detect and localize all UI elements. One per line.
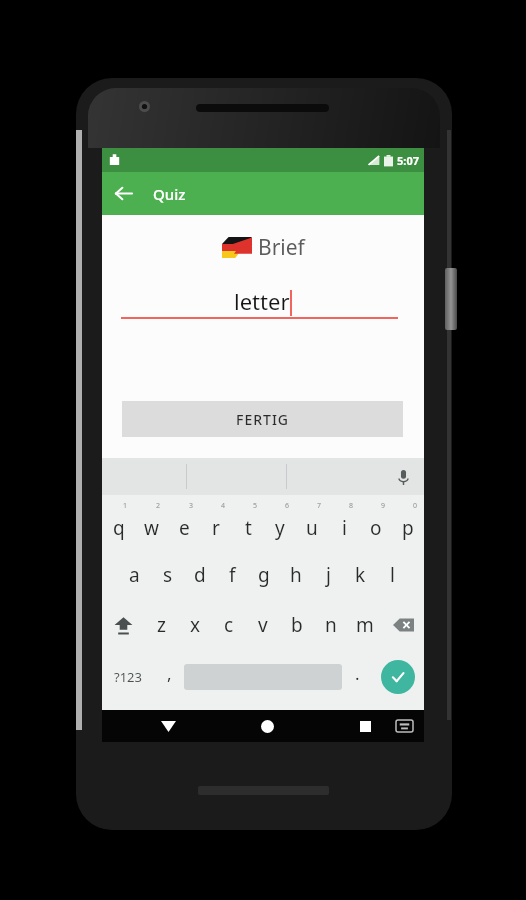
button[interactable]: x <box>178 601 212 649</box>
button[interactable]: Power <box>445 268 457 330</box>
staticText: 4 <box>221 501 226 511</box>
staticText: 8 <box>349 501 354 511</box>
button[interactable]: 3 <box>168 501 200 549</box>
staticText: 2 <box>156 501 161 511</box>
staticText: 9 <box>381 501 386 511</box>
staticText: m <box>356 612 374 638</box>
staticText: 7 <box>317 501 322 511</box>
button[interactable]: 0 <box>392 501 424 549</box>
button[interactable]: Shift <box>102 601 144 649</box>
button[interactable]: ?123 <box>102 651 154 703</box>
button[interactable]: 6 <box>264 501 296 549</box>
staticText: FERTIG <box>236 410 290 429</box>
button[interactable]: 2 <box>135 501 168 549</box>
staticText: c <box>224 612 234 638</box>
button[interactable]: Back <box>150 710 186 742</box>
staticText: h <box>290 562 302 588</box>
button[interactable]: m <box>348 601 382 649</box>
button[interactable]: z <box>144 601 178 649</box>
button[interactable]: Enter <box>381 660 415 694</box>
staticText: q <box>113 515 125 541</box>
button[interactable]: 1 <box>102 501 135 549</box>
staticText: e <box>179 515 190 541</box>
staticText: g <box>258 562 270 588</box>
button[interactable]: Voice input <box>391 465 415 489</box>
staticText: d <box>194 562 206 588</box>
button[interactable]: g <box>248 551 280 599</box>
staticText: o <box>370 515 382 541</box>
staticText: . <box>355 662 360 685</box>
button[interactable]: 8 <box>328 501 360 549</box>
button[interactable]: 7 <box>296 501 328 549</box>
button[interactable]: Home <box>249 710 285 742</box>
button[interactable]: , <box>154 651 184 703</box>
staticText: n <box>325 612 337 638</box>
button[interactable]: 4 <box>200 501 232 549</box>
staticText: k <box>355 562 366 588</box>
staticText: l <box>390 562 395 588</box>
staticText: 1 <box>123 501 128 511</box>
button[interactable]: b <box>280 601 314 649</box>
staticText: z <box>157 612 166 638</box>
button[interactable]: FERTIG <box>122 401 403 437</box>
button[interactable]: l <box>376 551 408 599</box>
staticText: ?123 <box>114 668 142 686</box>
staticText: , <box>167 662 172 685</box>
staticText: a <box>129 562 140 588</box>
staticText: b <box>291 612 303 638</box>
button[interactable]: c <box>212 601 246 649</box>
button[interactable]: k <box>344 551 376 599</box>
staticText: y <box>275 515 285 541</box>
button[interactable]: 5 <box>232 501 264 549</box>
staticText: x <box>190 612 201 638</box>
button[interactable]: n <box>314 601 348 649</box>
button[interactable]: Recents <box>348 710 382 742</box>
staticText: 5:07 <box>397 153 419 168</box>
button[interactable]: h <box>280 551 312 599</box>
button[interactable]: f <box>216 551 248 599</box>
button[interactable]: a <box>118 551 151 599</box>
staticText: u <box>306 515 318 541</box>
button[interactable]: v <box>246 601 280 649</box>
button[interactable]: . <box>342 651 372 703</box>
button[interactable]: Back <box>102 172 145 215</box>
staticText: i <box>342 515 347 541</box>
staticText: w <box>144 515 159 541</box>
staticText: t <box>245 515 252 541</box>
staticText: 3 <box>189 501 194 511</box>
staticText: Quiz <box>153 184 186 204</box>
staticText: v <box>258 612 268 638</box>
staticText: j <box>326 562 331 588</box>
staticText: p <box>402 515 414 541</box>
button[interactable]: Switch keyboard <box>388 710 420 742</box>
button[interactable]: Backspace <box>382 601 424 649</box>
button[interactable]: 9 <box>360 501 392 549</box>
staticText: 0 <box>413 501 418 511</box>
staticText: f <box>229 562 236 588</box>
staticText: s <box>163 562 173 588</box>
staticText: r <box>212 515 220 541</box>
button[interactable]: d <box>184 551 216 599</box>
button[interactable]: j <box>312 551 344 599</box>
staticText: 6 <box>285 501 290 511</box>
staticText: letter <box>234 286 290 316</box>
staticText: Brief <box>258 233 305 262</box>
staticText: 5 <box>253 501 258 511</box>
button[interactable]: s <box>151 551 184 599</box>
